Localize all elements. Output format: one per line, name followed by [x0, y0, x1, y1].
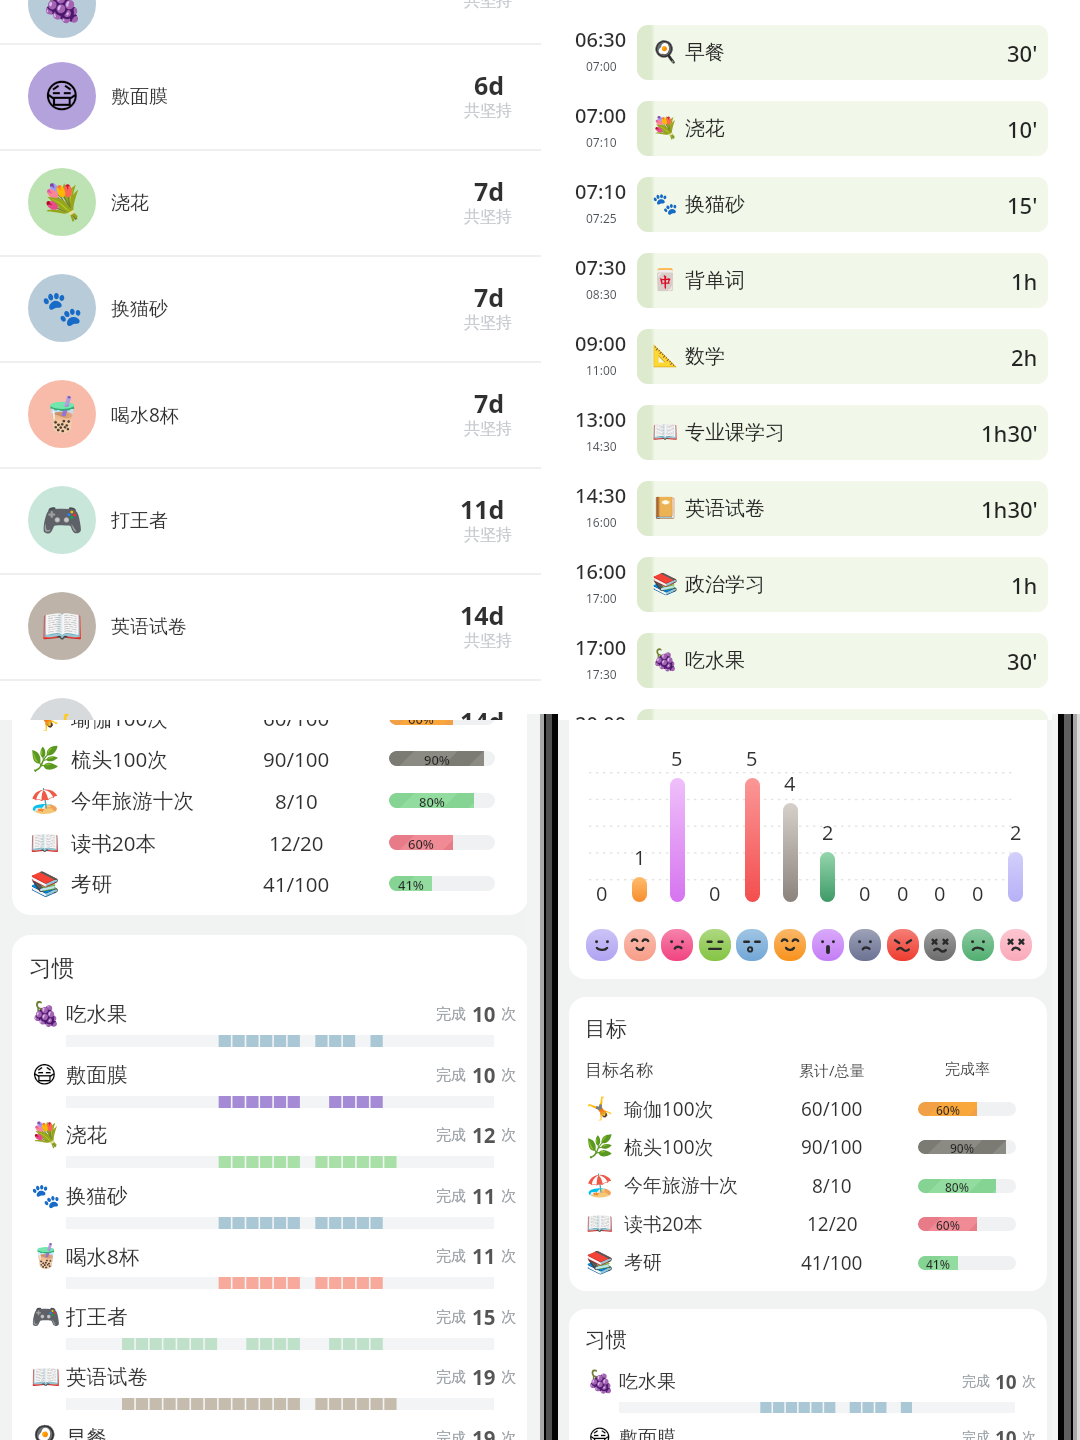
staticText: 今年旅游十次 [624, 1174, 738, 1198]
button[interactable]: 🍇 [12, 995, 528, 1049]
staticText: 完成 [436, 1186, 467, 1205]
staticText: 8/10 [275, 787, 318, 815]
staticText: 09:00 [575, 330, 627, 357]
staticText: 早餐 [66, 1425, 108, 1440]
button[interactable]: 📖 [12, 822, 528, 863]
button[interactable]: 🌿 [569, 1128, 1047, 1166]
staticText: 🍇 [31, 1000, 57, 1028]
staticText: 07:00 [586, 58, 617, 74]
staticText: 共坚持 [464, 207, 512, 227]
button[interactable]: 🏖 [569, 1167, 1047, 1205]
staticText: 10 [472, 1000, 496, 1028]
button[interactable]: 🌿 [12, 738, 528, 779]
button[interactable]: 🎮 [0, 468, 541, 573]
staticText: 80% [419, 793, 445, 808]
staticText: 📔 [652, 496, 679, 521]
staticText: 🍳 [31, 1424, 57, 1440]
staticText: 📚 [586, 1250, 612, 1276]
button[interactable]: 🏖 [12, 780, 528, 821]
button[interactable]: 📖 [12, 1358, 528, 1412]
button[interactable]: 💐 [0, 150, 541, 255]
button[interactable]: 📔 [637, 481, 1048, 536]
button[interactable]: 🤸 [569, 1090, 1047, 1128]
button[interactable]: 💐 [12, 1116, 528, 1170]
staticText: 60% [408, 835, 434, 850]
staticText: 😷 [44, 76, 80, 116]
staticText: 敷面膜 [111, 85, 168, 109]
staticText: 11 [472, 1182, 496, 1210]
button[interactable]: 🍇 [569, 1365, 1047, 1415]
staticText: 1h30' [981, 418, 1038, 448]
staticText: 90/100 [263, 745, 330, 773]
staticText: 数学 [685, 344, 725, 369]
staticText: 考研 [624, 1251, 662, 1275]
staticText: 07:30 [575, 254, 627, 281]
staticText: 12/20 [269, 829, 324, 857]
staticText: 16:00 [575, 558, 627, 585]
button[interactable]: 🍳 [637, 25, 1048, 80]
button[interactable]: 🧋 [0, 362, 541, 467]
button[interactable]: 📖 [569, 1205, 1047, 1243]
button[interactable]: 🐾 [12, 1177, 528, 1231]
staticText: 喝水8杯 [66, 1242, 140, 1270]
button[interactable]: 📖 [637, 405, 1048, 460]
staticText: 完成 [962, 1429, 990, 1440]
staticText: 共坚持 [464, 313, 512, 333]
staticText: 读书20本 [71, 829, 157, 857]
staticText: 60% [936, 1102, 960, 1116]
staticText: 80% [945, 1179, 969, 1193]
staticText: 14d [460, 598, 505, 632]
staticText: 目标名称 [585, 1060, 653, 1081]
button[interactable]: 💐 [637, 101, 1048, 156]
staticText: 🍇 [652, 648, 679, 673]
button[interactable]: 🀄 [637, 253, 1048, 308]
button[interactable]: 🍳 [12, 1419, 528, 1440]
staticText: 😷 [32, 1061, 57, 1089]
staticText: 次 [501, 1307, 517, 1326]
button[interactable]: 😷 [569, 1421, 1047, 1440]
staticText: 2 [822, 819, 834, 846]
staticText: 90/100 [801, 1134, 863, 1160]
staticText: 41% [926, 1256, 950, 1270]
staticText: 换猫砂 [66, 1183, 128, 1209]
button[interactable]: 📚 [569, 1244, 1047, 1282]
staticText: 敷面膜 [66, 1062, 128, 1088]
button[interactable]: 🐾 [637, 177, 1048, 232]
button[interactable]: 📚 [637, 557, 1048, 612]
staticText: 41/100 [801, 1250, 863, 1276]
staticText: 10 [995, 1369, 1017, 1395]
staticText: 0 [934, 880, 946, 907]
staticText: 💐 [41, 182, 84, 222]
staticText: 5 [671, 745, 683, 772]
button[interactable]: 🧋 [12, 1237, 528, 1291]
staticText: 📚 [30, 870, 58, 898]
button[interactable]: 📖 [0, 574, 541, 679]
button[interactable]: 😷 [0, 44, 541, 149]
staticText: 14d [460, 704, 505, 720]
staticText: 1h [1011, 266, 1038, 296]
staticText: 10' [1007, 114, 1038, 144]
staticText: 习惯 [29, 954, 75, 983]
staticText: 4 [784, 770, 796, 797]
staticText: 共坚持 [464, 0, 512, 11]
button[interactable]: 😷 [12, 1056, 528, 1110]
staticText: 🏖 [586, 1173, 612, 1199]
button[interactable]: 🤸 [12, 720, 528, 738]
button[interactable]: 🍇 [637, 633, 1048, 688]
staticText: 背单词 [685, 268, 745, 293]
staticText: 梳头100次 [624, 1134, 714, 1160]
staticText: 19 [472, 1363, 496, 1391]
button[interactable]: 🎮 [12, 1298, 528, 1352]
button[interactable]: 🐾 [0, 256, 541, 361]
staticText: 11d [460, 492, 505, 526]
button[interactable]: 📚 [637, 709, 1048, 720]
button[interactable]: 📚 [12, 863, 528, 904]
staticText: 读书20本 [624, 1211, 703, 1237]
staticText: 英语试卷 [685, 496, 765, 521]
staticText: 14:30 [586, 438, 617, 454]
button[interactable]: 📐 [637, 329, 1048, 384]
staticText: 🍇 [587, 1369, 611, 1395]
button[interactable]: 🤸 [0, 680, 541, 720]
staticText: 0 [709, 880, 721, 907]
staticText: 7d [474, 174, 505, 208]
